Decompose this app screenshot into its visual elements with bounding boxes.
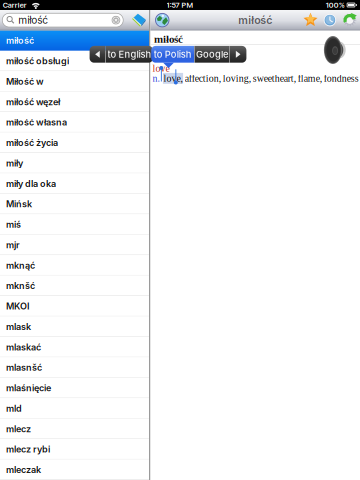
staticText: n. <box>152 73 159 84</box>
staticText: love <box>152 63 169 74</box>
button[interactable]: miś <box>0 214 149 235</box>
staticText: to English <box>107 49 151 60</box>
button[interactable]: mlaskać <box>0 337 149 357</box>
button[interactable]: MKOI <box>0 296 149 316</box>
button[interactable]: miłość obsługi <box>0 51 149 71</box>
staticText: 1:57 PM <box>166 0 193 9</box>
staticText: Google <box>196 49 228 60</box>
staticText: mknšć <box>6 280 35 291</box>
staticText: miś <box>6 219 21 230</box>
staticText: mlaskać <box>6 342 41 353</box>
button[interactable]: miłość <box>2 13 123 27</box>
button[interactable]: miły dla oka <box>0 173 149 194</box>
button[interactable]: to English <box>106 46 153 63</box>
button[interactable]: mknąć <box>0 255 149 275</box>
staticText: mknąć <box>6 260 35 271</box>
staticText: mld <box>6 403 22 414</box>
button[interactable]: to Polish <box>151 46 194 63</box>
button[interactable]: miłość węzeł <box>0 92 149 112</box>
staticText: miły dla oka <box>6 178 56 189</box>
staticText: mlecz <box>6 423 31 434</box>
button[interactable]: mld <box>0 398 149 419</box>
staticText: mlaśnięcie <box>6 382 51 393</box>
button[interactable]: miłość własna <box>0 112 149 132</box>
button[interactable]: Dictionaries <box>131 13 146 27</box>
staticText: Miłość w <box>6 76 44 87</box>
button[interactable]: Mińsk <box>0 194 149 214</box>
staticText: miłość <box>238 14 272 27</box>
staticText: mlasnšć <box>6 362 42 373</box>
button[interactable]: Add to favourites <box>303 13 318 28</box>
button[interactable]: miłość <box>0 30 149 51</box>
staticText: to Polish <box>154 49 192 60</box>
staticText: miłość własna <box>6 117 67 128</box>
staticText: miłość <box>154 33 183 45</box>
staticText: mlask <box>6 321 31 332</box>
staticText: mjr <box>6 239 20 250</box>
button[interactable]: Google <box>195 46 229 63</box>
button[interactable]: Previous options <box>90 46 105 63</box>
button[interactable]: mleczak <box>0 459 149 480</box>
button[interactable]: mknšć <box>0 276 149 296</box>
button[interactable]: mlaśnięcie <box>0 378 149 398</box>
button[interactable]: mlask <box>0 316 149 337</box>
button[interactable]: Refresh <box>342 13 357 27</box>
staticText: miłość życia <box>6 137 58 148</box>
button[interactable]: miły <box>0 153 149 173</box>
button[interactable]: mjr <box>0 235 149 255</box>
staticText: mlecz rybi <box>6 444 50 455</box>
staticText: Carrier <box>3 0 27 9</box>
staticText: love, <box>163 73 182 84</box>
staticText: miłość <box>6 35 34 46</box>
button[interactable]: Miłość w <box>0 71 149 92</box>
staticText: miłość <box>18 14 48 26</box>
button[interactable]: History <box>324 14 336 26</box>
staticText: affection, loving, sweetheart, flame, fo… <box>185 73 359 84</box>
button[interactable]: mlasnšć <box>0 357 149 378</box>
staticText: miły <box>6 158 23 169</box>
staticText: MKOI <box>6 301 30 312</box>
button[interactable]: Pronounce <box>323 35 346 65</box>
button[interactable]: More options <box>230 46 246 63</box>
button[interactable]: miłość życia <box>0 132 149 153</box>
staticText: 100% <box>326 0 345 9</box>
staticText: mleczak <box>6 464 41 475</box>
staticText: Mińsk <box>6 199 32 210</box>
staticText: miłość węzeł <box>6 96 60 107</box>
button[interactable]: mlecz rybi <box>0 439 149 459</box>
button[interactable]: mlecz <box>0 419 149 439</box>
button[interactable]: Translate <box>155 13 169 27</box>
staticText: miłość obsługi <box>6 55 69 66</box>
